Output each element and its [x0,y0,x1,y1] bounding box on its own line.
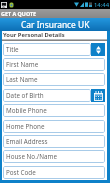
other: Signal [80,1,84,8]
staticText: House No./Name [6,152,57,161]
other: Screenshot [1,2,7,8]
button[interactable]: House No./Name [3,150,105,163]
staticText: GET A QUOTE [1,10,37,17]
button[interactable]: Home Phone [3,120,105,133]
staticText: First Name [6,60,39,69]
button[interactable]: Date of Birth [3,89,105,102]
staticText: Your Personal Details [3,31,65,39]
staticText: Home Phone [6,122,45,131]
button[interactable]: Title [3,43,105,56]
staticText: Last Name [6,75,38,84]
button[interactable]: Email Address [3,135,105,148]
staticText: Post Code [6,168,36,177]
staticText: 14:44 [94,1,110,9]
other: Battery [85,1,88,8]
other: Android [9,2,14,8]
other: Wifi [74,1,79,8]
button[interactable]: Select title [91,43,105,56]
button[interactable]: GET A QUOTE [0,9,110,18]
button[interactable]: Post Code [3,166,105,179]
button[interactable]: Last Name [3,73,105,86]
button[interactable]: Pick date [91,89,105,102]
button[interactable]: Your Personal Details [2,31,107,39]
staticText: Title [6,45,19,54]
staticText: Car Insurance UK [21,19,90,30]
staticText: Date of Birth [6,91,44,100]
staticText: Email Address [6,137,48,146]
button[interactable]: First Name [3,58,105,71]
staticText: Mobile Phone [6,106,47,115]
button[interactable]: Mobile Phone [3,104,105,117]
